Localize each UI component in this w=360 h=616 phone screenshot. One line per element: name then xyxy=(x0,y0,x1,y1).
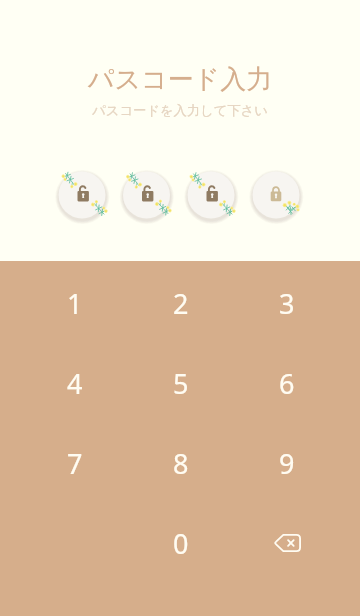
staticText: 5 xyxy=(173,365,189,402)
button[interactable]: 3 xyxy=(234,263,340,343)
button[interactable]: 2 xyxy=(128,263,234,343)
staticText: 0 xyxy=(173,525,189,562)
button[interactable]: 0 xyxy=(128,503,234,583)
staticText: 9 xyxy=(279,445,295,482)
staticText: 4 xyxy=(67,365,83,402)
staticText: 7 xyxy=(67,445,83,482)
staticText: 6 xyxy=(279,365,295,402)
staticText: 8 xyxy=(173,445,189,482)
button[interactable]: 6 xyxy=(234,343,340,423)
button[interactable]: 5 xyxy=(128,343,234,423)
button[interactable]: 8 xyxy=(128,423,234,503)
staticText: 1 xyxy=(67,285,83,322)
button[interactable]: 1 xyxy=(22,263,128,343)
button[interactable]: 7 xyxy=(22,423,128,503)
button[interactable]: 4 xyxy=(22,343,128,423)
staticText: パスコードを入力して下さい xyxy=(0,102,360,119)
button[interactable]: Delete xyxy=(234,503,340,583)
staticText: 3 xyxy=(279,285,295,322)
button[interactable]: 9 xyxy=(234,423,340,503)
staticText: パスコード入力 xyxy=(0,63,360,96)
staticText: 2 xyxy=(173,285,189,322)
